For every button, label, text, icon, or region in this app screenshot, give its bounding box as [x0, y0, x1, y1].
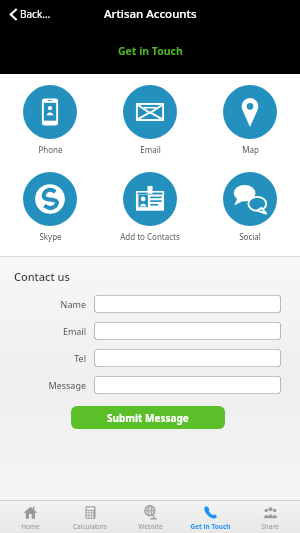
staticText: Back...	[20, 7, 51, 21]
other: Phone	[23, 85, 77, 139]
staticText: Submit Message	[107, 411, 189, 425]
button[interactable]: Home	[0, 500, 60, 533]
other: Social	[223, 172, 277, 226]
staticText: Phone	[38, 144, 63, 155]
staticText: Tel	[10, 352, 86, 364]
button[interactable]: Website	[120, 500, 180, 533]
staticText: Email	[10, 325, 86, 337]
button[interactable]: Calculators	[60, 500, 120, 533]
button[interactable]	[94, 376, 281, 394]
staticText: Website	[138, 522, 163, 531]
staticText: Get in Touch	[190, 522, 231, 531]
staticText: Home	[21, 522, 40, 531]
button[interactable]	[94, 349, 281, 367]
button[interactable]: Add to Contacts	[100, 170, 200, 244]
staticText: Message	[10, 379, 86, 391]
staticText: Social	[239, 231, 261, 242]
other: Email	[123, 85, 177, 139]
other: Add to Contacts	[123, 172, 177, 226]
staticText: Skype	[39, 231, 62, 242]
button[interactable]	[94, 322, 281, 340]
staticText: Share	[261, 522, 279, 531]
staticText: Name	[10, 298, 86, 310]
button[interactable]: Map	[200, 83, 300, 157]
button[interactable]: Phone	[0, 83, 100, 157]
staticText: Contact us	[14, 269, 70, 284]
button[interactable]: Get in Touch	[110, 40, 191, 62]
other: Skype	[23, 172, 77, 226]
staticText: Map	[242, 144, 259, 155]
other: Map	[223, 85, 277, 139]
button[interactable]: Submit Message	[71, 406, 225, 429]
button[interactable]: Social	[200, 170, 300, 244]
button[interactable]: Email	[100, 83, 200, 157]
button[interactable]: Get in Touch	[180, 500, 240, 533]
staticText: Artisan Accounts	[104, 6, 197, 22]
staticText: Calculators	[73, 522, 107, 531]
staticText: Add to Contacts	[120, 231, 180, 242]
staticText: Get in Touch	[118, 44, 183, 58]
button[interactable]: Skype	[0, 170, 100, 244]
button[interactable]: Share	[240, 500, 300, 533]
button[interactable]: Back...	[0, 3, 59, 25]
button[interactable]	[94, 295, 281, 313]
staticText: Email	[140, 144, 161, 155]
